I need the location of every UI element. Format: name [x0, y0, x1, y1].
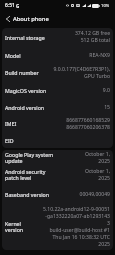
- button[interactable]: Model: [2, 46, 113, 64]
- button[interactable]: Android security patch level: [2, 166, 113, 184]
- staticText: About phone: [13, 15, 49, 23]
- staticText: Google Play system update: [5, 151, 59, 165]
- staticText: Baseband version: [5, 191, 51, 198]
- staticText: G: [16, 3, 20, 9]
- staticText: Model: [5, 52, 51, 59]
- button[interactable]: Google Play system update: [2, 150, 113, 166]
- staticText: 00049,00049: [79, 191, 110, 198]
- staticText: IMEI: [5, 120, 51, 127]
- staticText: 866877660168529 866877060206378: [66, 117, 110, 131]
- button[interactable]: MagicOS version: [2, 81, 113, 99]
- button[interactable]: Android version: [2, 99, 113, 115]
- button[interactable]: EID: [2, 132, 113, 148]
- staticText: October 1, 2025: [84, 151, 110, 165]
- staticText: Android security patch level: [5, 168, 59, 182]
- staticText: 9.0.0.177(C4D6E7R3P1), GPU Turbo: [53, 66, 110, 80]
- staticText: Build number: [5, 69, 51, 76]
- button[interactable]: Back: [2, 13, 13, 24]
- staticText: EID: [5, 137, 51, 144]
- staticText: 5.10.22a-android12-9-00051 -ga1332220a07…: [42, 206, 110, 248]
- staticText: October 1, 2025: [84, 168, 110, 182]
- button[interactable]: Build number: [2, 64, 113, 81]
- button[interactable]: Baseband version: [2, 184, 113, 204]
- staticText: 374.12 GB free 512 GB total: [74, 30, 110, 44]
- staticText: Android version: [5, 104, 51, 111]
- staticText: MagicOS version: [5, 87, 51, 94]
- staticText: Internal storage: [5, 34, 51, 41]
- staticText: 10%: [101, 3, 110, 9]
- staticText: 9.0: [102, 87, 110, 94]
- button[interactable]: IMEI: [2, 115, 113, 132]
- staticText: 15: [104, 104, 110, 111]
- button[interactable]: Internal storage: [2, 28, 113, 46]
- staticText: 6:51: [5, 2, 15, 9]
- button[interactable]: Kernel version: [2, 204, 113, 250]
- staticText: Kernel version: [5, 220, 39, 234]
- staticText: REA-NX9: [89, 52, 110, 59]
